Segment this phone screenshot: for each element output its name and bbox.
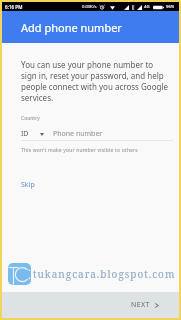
staticText: Phone number [53,129,103,139]
staticText: 6:16 PM [5,4,23,10]
button[interactable]: NEXT [131,300,159,310]
staticText: Add phone number [21,20,122,35]
staticText: NEXT [131,300,150,310]
staticText: This won't make your number visible to o… [21,147,138,154]
staticText: 4G [144,4,150,10]
staticText: 96% [166,4,175,10]
staticText: tukangcara.blogspot.com [33,267,176,281]
button[interactable]: Skip [21,180,35,190]
staticText: 0.00K/s [82,4,97,10]
staticText: You can use your phone number to sign in… [21,59,168,103]
staticText: Country [21,115,40,122]
staticText: Skip [21,180,35,190]
staticText: ID [21,129,29,139]
